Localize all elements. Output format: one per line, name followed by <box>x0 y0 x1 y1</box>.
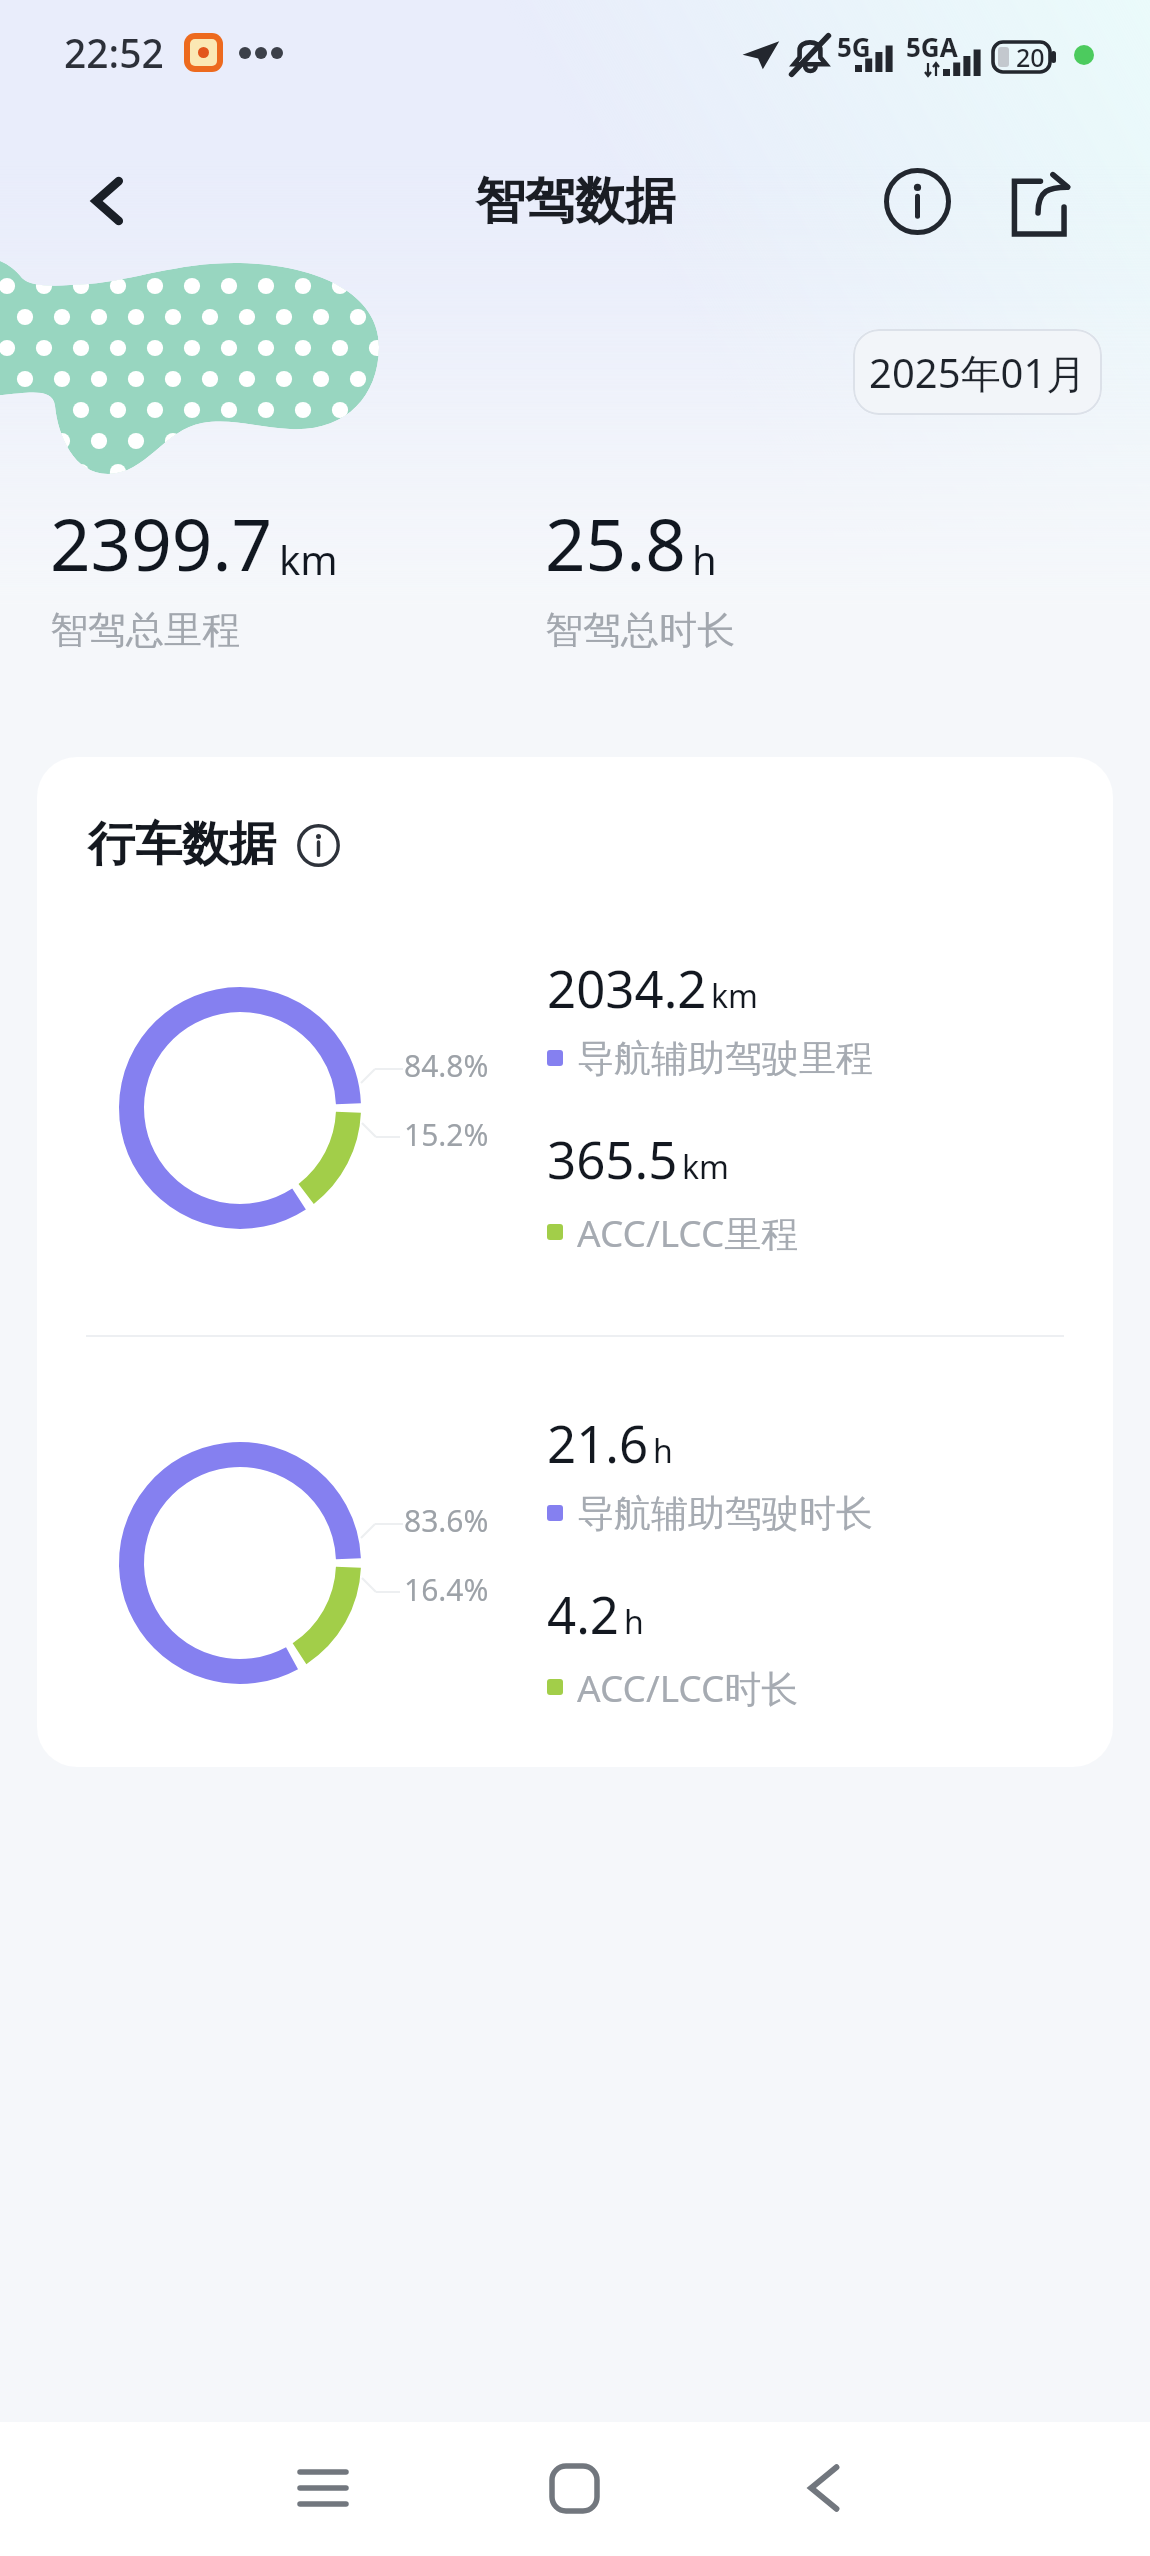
staticText: 导航辅助驾驶时长 <box>577 1490 873 1537</box>
staticText: h <box>624 1600 644 1644</box>
staticText: 25.8 <box>545 495 686 592</box>
button[interactable]: Back <box>768 2433 878 2543</box>
staticText: 15.2% <box>404 1114 489 1155</box>
button[interactable]: Back <box>66 159 150 243</box>
staticText: 5G <box>837 29 871 64</box>
staticText: ACC/LCC里程 <box>577 1207 799 1258</box>
staticText: 2025年01月 <box>869 345 1087 400</box>
staticText: h <box>692 532 717 586</box>
staticText: 2399.7 <box>50 495 273 592</box>
button[interactable]: 2025年01月 <box>853 329 1102 415</box>
staticText: km <box>711 974 759 1018</box>
staticText: 5GA <box>906 29 958 64</box>
staticText: 智驾数据 <box>475 170 675 233</box>
staticText: h <box>653 1429 673 1473</box>
staticText: 365.5 <box>547 1124 678 1193</box>
button[interactable]: Home <box>519 2433 629 2543</box>
button[interactable]: About driving data <box>294 821 342 869</box>
button[interactable]: Info <box>873 157 961 245</box>
button[interactable]: Recent apps <box>268 2433 378 2543</box>
staticText: 84.8% <box>404 1045 489 1086</box>
staticText: 导航辅助驾驶里程 <box>577 1035 873 1082</box>
staticText: 21.6 <box>547 1408 649 1477</box>
staticText: 83.6% <box>404 1500 489 1541</box>
staticText: 4.2 <box>547 1579 620 1648</box>
staticText: 智驾总里程 <box>50 606 240 654</box>
staticText: 2034.2 <box>547 953 707 1022</box>
staticText: 20 <box>1016 40 1045 74</box>
staticText: km <box>682 1145 730 1189</box>
staticText: 智驾总时长 <box>545 606 735 654</box>
staticText: 22:52 <box>64 26 164 79</box>
button[interactable]: Share <box>994 163 1082 251</box>
staticText: ACC/LCC时长 <box>577 1662 799 1713</box>
staticText: km <box>279 532 338 586</box>
staticText: 行车数据 <box>88 815 276 874</box>
staticText: 16.4% <box>404 1569 489 1610</box>
